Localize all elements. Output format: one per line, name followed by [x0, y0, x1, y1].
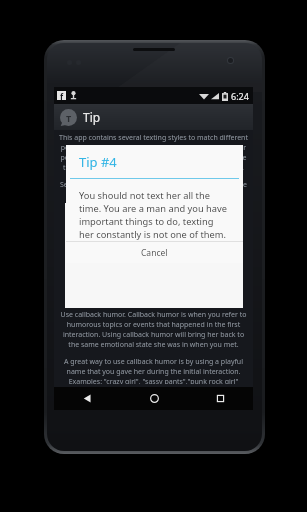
staticText: f — [60, 91, 64, 100]
staticText: A great way to use callback humor is by … — [59, 357, 248, 384]
staticText: Cancel — [141, 247, 168, 259]
button[interactable]: Home — [121, 387, 187, 410]
button[interactable]: Recent apps — [187, 387, 253, 410]
staticText: Tip #4 — [79, 153, 117, 171]
staticText: Use callback humor. Callback humor is wh… — [59, 310, 248, 350]
staticText: Send your first text within 24hours of m… — [59, 180, 248, 200]
button[interactable]: Tip app icon — [60, 109, 77, 126]
button[interactable]: Back — [54, 387, 121, 410]
staticText: 6:24 — [231, 90, 249, 102]
staticText: Tip — [83, 109, 101, 125]
button[interactable]: Cancel — [66, 242, 243, 263]
staticText: This app contains several texting styles… — [59, 133, 248, 173]
staticText: You should not text her all the time. Yo… — [79, 189, 230, 241]
staticText: T — [66, 112, 72, 124]
